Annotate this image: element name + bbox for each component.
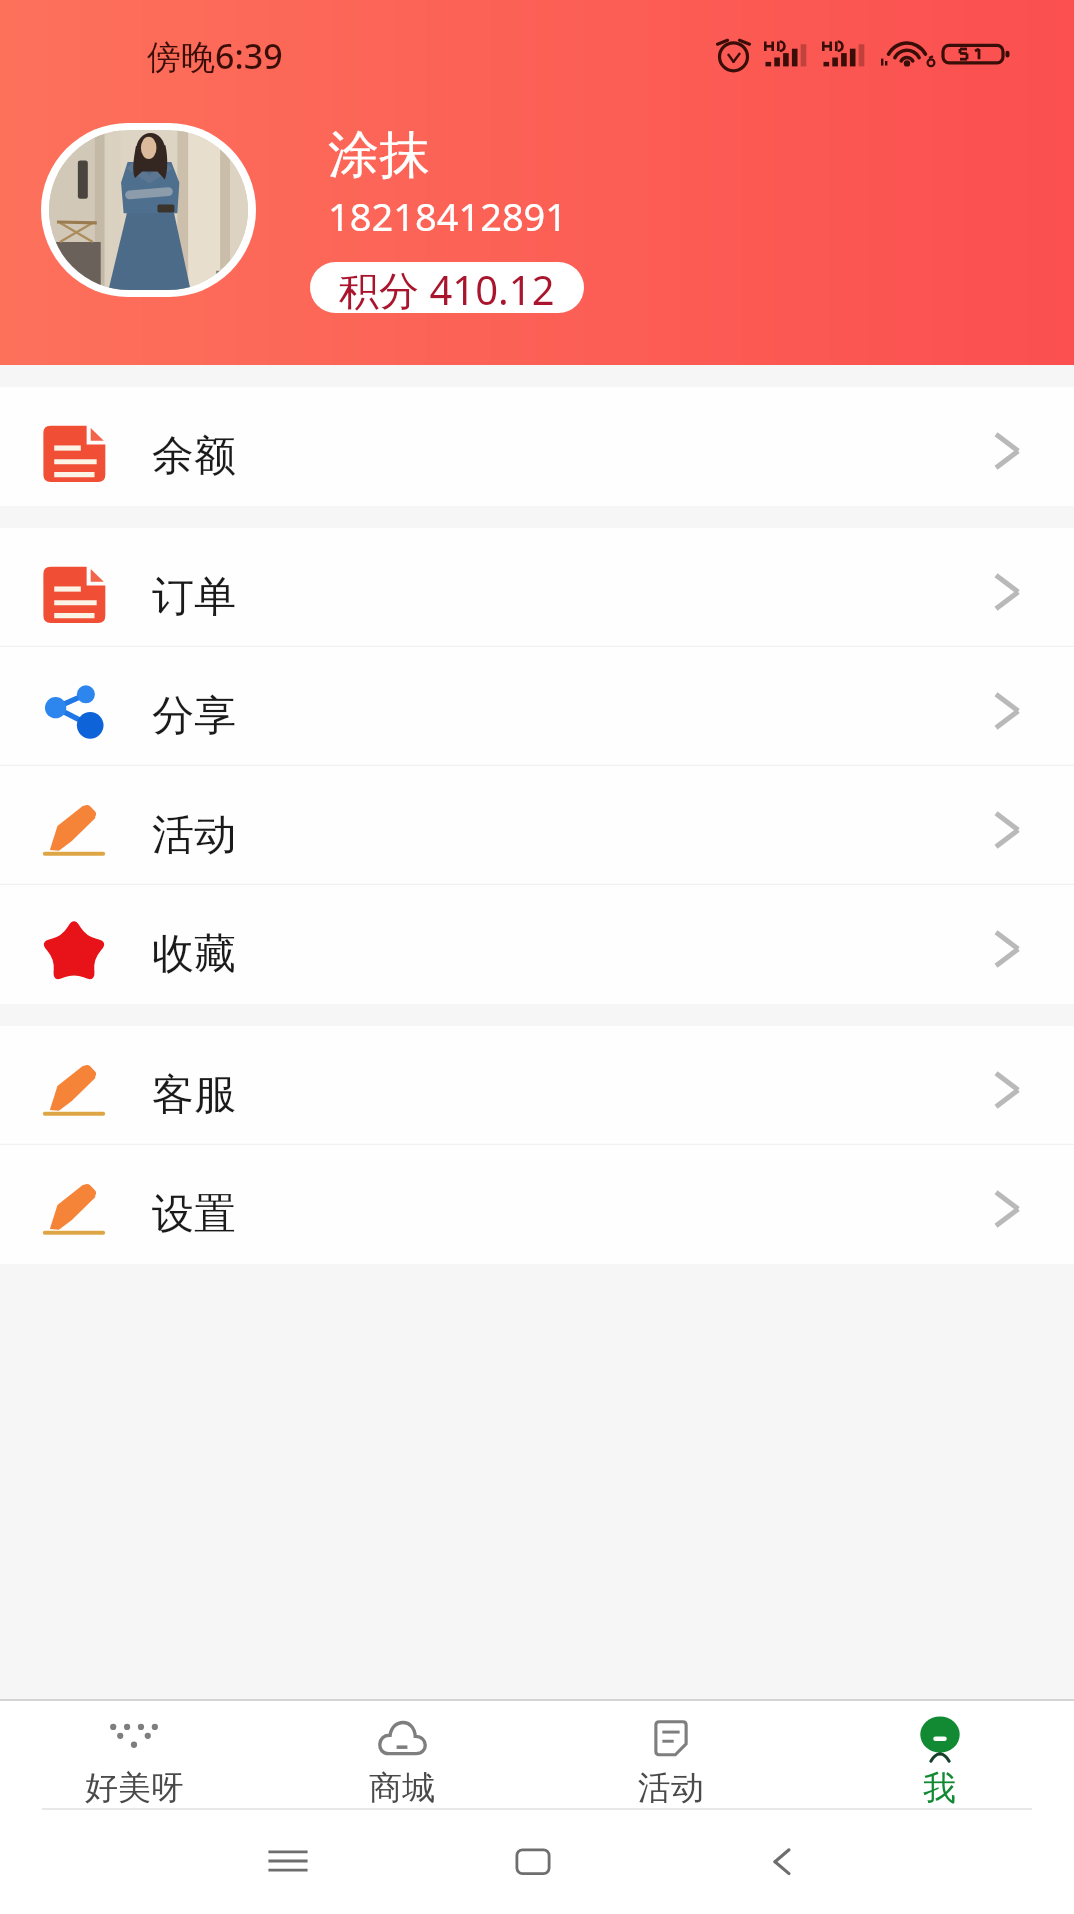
- button[interactable]: 订单: [0, 528, 1074, 647]
- staticText: 18218412891: [328, 190, 568, 242]
- staticText: 好美呀: [85, 1767, 184, 1808]
- staticText: 余额: [152, 430, 236, 483]
- button[interactable]: 商城: [268, 1701, 536, 1808]
- button[interactable]: 活动: [0, 766, 1074, 885]
- staticText: 活动: [638, 1767, 704, 1808]
- staticText: 涂抹: [328, 123, 430, 187]
- button[interactable]: 收藏: [0, 885, 1074, 1004]
- button[interactable]: 余额: [0, 387, 1074, 506]
- button[interactable]: 好美呀: [0, 1701, 268, 1808]
- button[interactable]: Home: [498, 1826, 568, 1896]
- button[interactable]: 设置: [0, 1145, 1074, 1264]
- button[interactable]: 积分 410.12: [310, 262, 584, 313]
- staticText: 设置: [152, 1188, 236, 1241]
- staticText: 活动: [152, 809, 236, 862]
- button[interactable]: 客服: [0, 1026, 1074, 1145]
- staticText: 收藏: [152, 928, 236, 981]
- button[interactable]: 活动: [536, 1701, 805, 1808]
- button[interactable]: Recents: [253, 1826, 323, 1896]
- button[interactable]: 我: [805, 1701, 1074, 1808]
- staticText: 我: [923, 1767, 956, 1808]
- staticText: 傍晚6:39: [147, 33, 283, 79]
- staticText: 客服: [152, 1069, 236, 1122]
- staticText: 订单: [152, 571, 236, 624]
- staticText: 商城: [369, 1767, 435, 1808]
- button[interactable]: Back: [747, 1826, 817, 1896]
- staticText: 积分 410.12: [339, 262, 555, 313]
- button[interactable]: 分享: [0, 647, 1074, 766]
- button[interactable]: Profile photo: [41, 123, 256, 297]
- staticText: 分享: [152, 690, 236, 743]
